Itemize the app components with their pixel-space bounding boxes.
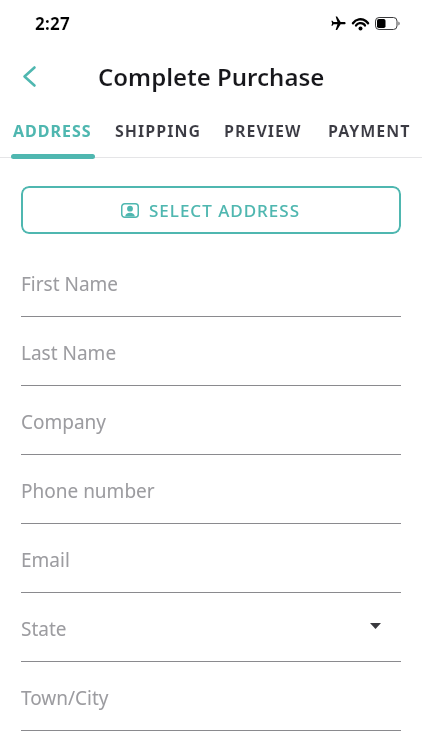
staticText: PREVIEW [224, 120, 302, 142]
button[interactable]: SELECT ADDRESS [21, 186, 401, 234]
staticText: 2:27 [35, 12, 71, 35]
staticText: SELECT ADDRESS [149, 199, 301, 222]
button[interactable]: Company [21, 386, 401, 455]
button[interactable]: PAYMENT [316, 108, 422, 154]
button[interactable]: ADDRESS [0, 108, 105, 154]
button[interactable]: Phone number [21, 455, 401, 524]
button[interactable]: First Name [21, 248, 401, 317]
staticText: Phone number [21, 478, 155, 504]
staticText: ADDRESS [13, 120, 92, 142]
staticText: Complete Purchase [98, 60, 325, 93]
staticText: SHIPPING [115, 120, 201, 142]
button[interactable]: SHIPPING [105, 108, 210, 154]
staticText: State [21, 616, 67, 642]
staticText: Email [21, 547, 70, 573]
staticText: First Name [21, 271, 119, 297]
button[interactable]: PREVIEW [210, 108, 316, 154]
button[interactable]: State [21, 593, 401, 662]
staticText: Last Name [21, 340, 117, 366]
button[interactable] [14, 61, 44, 91]
staticText: Company [21, 409, 107, 435]
button[interactable]: Town/City [21, 662, 401, 731]
button[interactable]: Email [21, 524, 401, 593]
staticText: Town/City [21, 685, 109, 711]
button[interactable]: Last Name [21, 317, 401, 386]
staticText: PAYMENT [328, 120, 411, 142]
